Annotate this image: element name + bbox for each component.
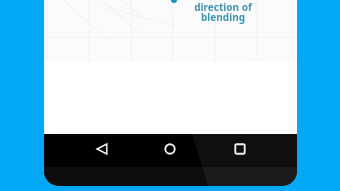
staticText: direction of blending bbox=[183, 0, 263, 24]
button[interactable]: Recent apps bbox=[234, 143, 246, 155]
button[interactable]: Home bbox=[164, 143, 176, 155]
button[interactable]: Back bbox=[96, 143, 108, 155]
